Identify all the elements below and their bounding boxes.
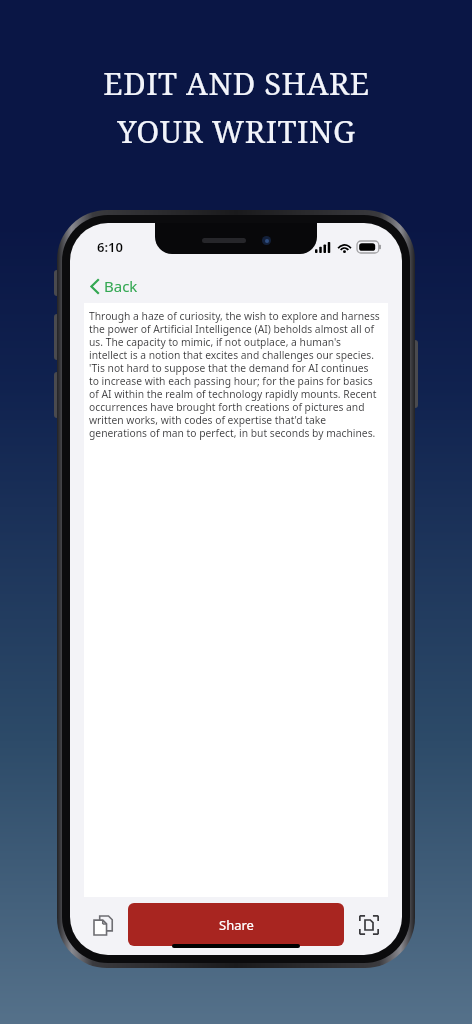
button[interactable]: Back xyxy=(84,269,144,303)
button[interactable]: Share xyxy=(128,903,344,946)
staticText: 6:10 xyxy=(97,238,123,256)
button[interactable]: Copy xyxy=(86,908,120,942)
staticText: YOUR WRITING xyxy=(117,110,356,152)
button[interactable]: Scan document xyxy=(352,908,386,942)
staticText: Back xyxy=(104,276,138,296)
staticText: Through a haze of curiosity, the wish to… xyxy=(89,309,381,440)
staticText: Share xyxy=(219,916,254,934)
staticText: EDIT AND SHARE xyxy=(103,62,370,104)
